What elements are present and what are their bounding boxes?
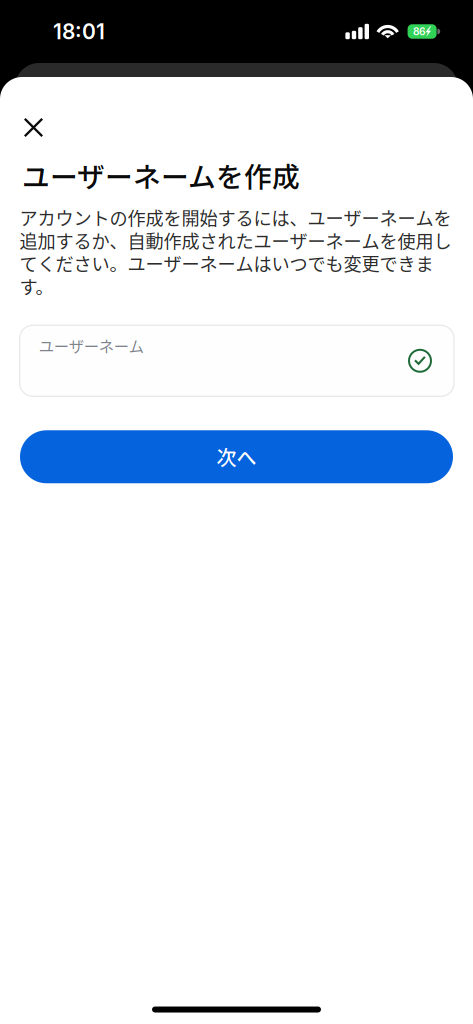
button[interactable]: ユーザーネーム	[20, 325, 454, 396]
button[interactable]: Close	[0, 112, 53, 143]
staticText: アカウントの作成を開始するには、ユーザーネームを追加するか、自動作成されたユーザ…	[19, 204, 451, 299]
button[interactable]: 次へ	[20, 430, 453, 483]
staticText: 次へ	[216, 442, 256, 471]
staticText: 18:01	[53, 19, 105, 44]
staticText: ユーザーネームを作成	[22, 155, 300, 195]
staticText: ユーザーネーム	[39, 334, 144, 356]
staticText: 86	[413, 25, 425, 38]
